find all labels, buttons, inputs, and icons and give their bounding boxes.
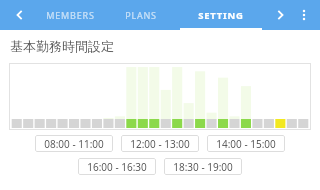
button[interactable]: PLANS (110, 0, 172, 30)
button[interactable]: Forward (268, 3, 292, 27)
staticText: MEMBERS (46, 9, 95, 21)
button[interactable]: MEMBERS (35, 0, 105, 30)
button[interactable]: 14:00 - 15:00 (207, 135, 285, 152)
button[interactable]: 16:00 - 16:30 (78, 158, 156, 175)
staticText: 16:00 - 16:30 (87, 160, 147, 174)
staticText: SETTING (198, 9, 244, 22)
button[interactable]: SETTING (180, 0, 262, 30)
staticText: 18:30 - 19:00 (173, 160, 233, 174)
button[interactable]: Back (8, 3, 32, 27)
staticText: PLANS (125, 9, 157, 21)
staticText: 08:00 - 11:00 (44, 137, 104, 151)
button[interactable]: 18:30 - 19:00 (164, 158, 242, 175)
button[interactable]: More options (292, 3, 316, 27)
button[interactable]: 12:00 - 13:00 (121, 135, 199, 152)
staticText: 12:00 - 13:00 (130, 137, 190, 151)
staticText: 基本勤務時間設定 (10, 38, 114, 54)
button[interactable]: 08:00 - 11:00 (35, 135, 113, 152)
staticText: 14:00 - 15:00 (216, 137, 276, 151)
